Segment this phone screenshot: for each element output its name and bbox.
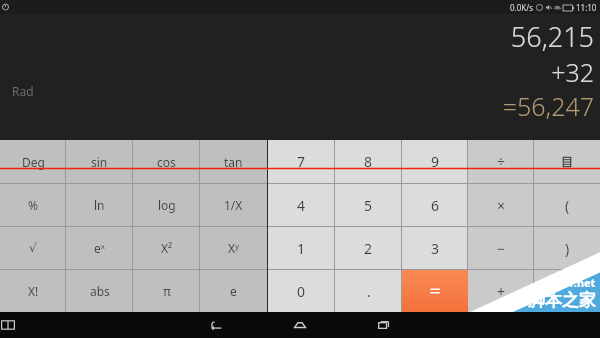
staticText: 56,215 xyxy=(510,18,594,55)
button[interactable]: × xyxy=(468,184,534,226)
staticText: sin xyxy=(91,154,108,170)
staticText: ) xyxy=(565,239,570,258)
button[interactable]: Delete xyxy=(534,140,600,183)
staticText: Deg xyxy=(22,154,45,170)
button[interactable]: 3 xyxy=(402,227,468,269)
button[interactable]: 1 xyxy=(268,227,335,269)
staticText: 2 xyxy=(364,239,373,258)
staticText: ÷ xyxy=(497,152,506,171)
button[interactable]: 5 xyxy=(335,184,402,226)
staticText: 8 xyxy=(364,152,373,171)
button[interactable]: ( xyxy=(534,184,600,226)
button[interactable]: √ xyxy=(0,227,66,269)
button[interactable]: Xʸ xyxy=(200,227,267,269)
staticText: 1 xyxy=(297,239,306,258)
button[interactable]: 1/X xyxy=(200,184,267,226)
staticText: 6 xyxy=(431,196,440,215)
staticText: abs xyxy=(90,283,110,299)
staticText: 1/X xyxy=(224,197,243,213)
staticText: ( xyxy=(565,196,570,215)
staticText: % xyxy=(28,197,38,213)
staticText: e xyxy=(230,283,237,299)
staticText: cos xyxy=(157,154,176,170)
button[interactable] xyxy=(402,270,468,312)
staticText: jb51.net xyxy=(551,275,596,290)
button[interactable]: % xyxy=(0,184,66,226)
staticText: Xʸ xyxy=(228,240,240,256)
button[interactable]: ÷ xyxy=(468,140,534,183)
button[interactable]: ln xyxy=(66,184,133,226)
staticText: − xyxy=(497,239,506,258)
staticText: =56,247 xyxy=(502,89,594,123)
button[interactable]: 9 xyxy=(402,140,468,183)
button[interactable]: cos xyxy=(133,140,200,183)
staticText: 11:10 xyxy=(576,2,597,13)
staticText: X! xyxy=(28,283,39,299)
staticText: π xyxy=(163,283,171,299)
button[interactable] xyxy=(534,270,600,312)
button[interactable]: + xyxy=(468,270,534,312)
staticText: . xyxy=(367,282,371,301)
staticText: √ xyxy=(29,241,37,255)
button[interactable]: 4 xyxy=(268,184,335,226)
staticText: 9 xyxy=(431,152,440,171)
button[interactable]: e xyxy=(200,270,267,312)
button[interactable]: X! xyxy=(0,270,66,312)
staticText: + xyxy=(497,282,506,301)
button[interactable]: π xyxy=(133,270,200,312)
button[interactable]: 8 xyxy=(335,140,402,183)
button[interactable]: X² xyxy=(133,227,200,269)
button[interactable]: Recents xyxy=(371,312,397,338)
staticText: 脚本之家 xyxy=(528,290,596,311)
button[interactable]: 2 xyxy=(335,227,402,269)
button[interactable]: Home xyxy=(287,312,313,338)
staticText: eˣ xyxy=(94,240,105,256)
button[interactable]: 7 xyxy=(268,140,335,183)
button[interactable]: ) xyxy=(534,227,600,269)
staticText: × xyxy=(497,196,506,215)
button[interactable]: Split screen xyxy=(0,317,16,333)
button[interactable]: Rad xyxy=(12,83,34,99)
button[interactable]: tan xyxy=(200,140,267,183)
button[interactable]: . xyxy=(335,270,402,312)
button[interactable]: eˣ xyxy=(66,227,133,269)
button[interactable]: Deg xyxy=(0,140,66,183)
staticText: +32 xyxy=(551,55,594,89)
staticText: log xyxy=(158,197,176,213)
staticText: 0.0K/s xyxy=(510,2,534,13)
staticText: 4 xyxy=(297,196,306,215)
staticText: 3 xyxy=(431,239,440,258)
staticText: 7 xyxy=(297,152,306,171)
staticText: 5 xyxy=(364,196,373,215)
button[interactable]: abs xyxy=(66,270,133,312)
button[interactable]: log xyxy=(133,184,200,226)
staticText: tan xyxy=(224,154,243,170)
staticText: ln xyxy=(94,197,105,213)
staticText: 0 xyxy=(297,282,306,301)
button[interactable]: − xyxy=(468,227,534,269)
staticText: X² xyxy=(161,240,173,256)
button[interactable]: sin xyxy=(66,140,133,183)
button[interactable]: Back xyxy=(203,312,229,338)
button[interactable]: 0 xyxy=(268,270,335,312)
button[interactable]: 6 xyxy=(402,184,468,226)
